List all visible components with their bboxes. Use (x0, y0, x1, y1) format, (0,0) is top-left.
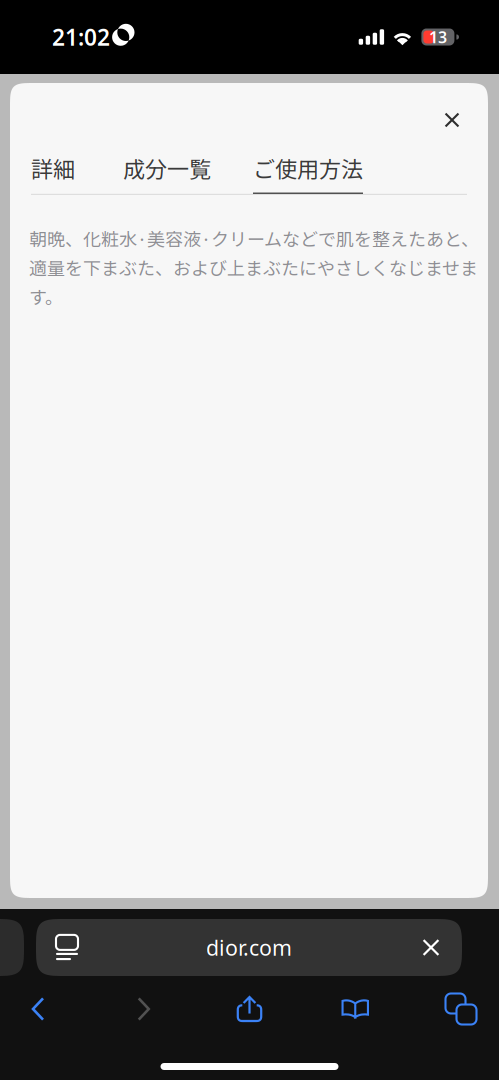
button[interactable]: 詳細 (31, 142, 75, 195)
staticText: 朝晩、化粧水·美容液·クリームなどで肌を整えたあと、適量を下まぶた、および上まぶ… (29, 225, 479, 309)
button[interactable]: Stop loading (400, 919, 462, 976)
staticText: 詳細 (31, 152, 75, 184)
staticText: 13 (429, 26, 447, 48)
staticText: 21:02 (52, 22, 110, 52)
button[interactable]: Close (430, 98, 474, 142)
button[interactable]: Page settings (36, 919, 98, 976)
staticText: ご使用方法 (253, 152, 363, 184)
button[interactable]: Share (211, 985, 287, 1033)
staticText: 成分一覧 (123, 152, 211, 184)
staticText: dior.com (206, 933, 292, 962)
button[interactable]: Tabs (423, 985, 499, 1033)
button[interactable]: Forward (106, 985, 182, 1033)
button[interactable]: ご使用方法 (253, 142, 363, 195)
button[interactable]: Back (0, 985, 76, 1033)
button[interactable]: Bookmarks (317, 985, 393, 1033)
button[interactable]: 成分一覧 (123, 142, 211, 195)
